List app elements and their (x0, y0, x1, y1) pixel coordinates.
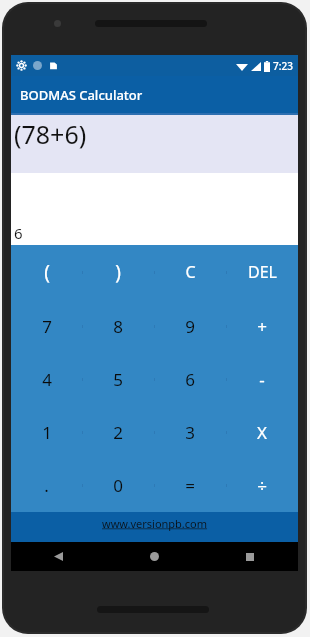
staticText: X (257, 421, 267, 444)
staticText: 4 (42, 368, 52, 391)
button[interactable]: 1 (11, 406, 82, 459)
button[interactable]: DEL (226, 245, 298, 299)
button[interactable]: 9 (154, 299, 226, 353)
button[interactable]: . (11, 459, 82, 512)
staticText: 2 (113, 421, 123, 444)
button[interactable]: 0 (82, 459, 154, 512)
staticText: DEL (248, 261, 277, 283)
button[interactable]: ÷ (226, 459, 298, 512)
button[interactable]: 6 (154, 353, 226, 406)
button[interactable]: 8 (82, 299, 154, 353)
button[interactable]: Home (106, 542, 202, 571)
button[interactable]: 2 (82, 406, 154, 459)
staticText: - (259, 368, 265, 391)
button[interactable]: C (154, 245, 226, 299)
button[interactable]: X (226, 406, 298, 459)
staticText: 6 (185, 368, 195, 391)
button[interactable]: (78+6) (11, 113, 298, 173)
staticText: www.versionpb.com (102, 516, 208, 531)
button[interactable]: Back (11, 542, 106, 571)
staticText: 6 (14, 223, 23, 243)
staticText: ) (115, 259, 121, 285)
staticText: C (185, 261, 196, 283)
staticText: 7:23 (273, 59, 293, 73)
staticText: BODMAS Calculator (20, 86, 143, 104)
button[interactable]: - (226, 353, 298, 406)
button[interactable]: 3 (154, 406, 226, 459)
staticText: 8 (113, 315, 123, 338)
staticText: . (44, 474, 49, 497)
button[interactable]: 6 (11, 173, 298, 245)
button[interactable]: www.versionpb.com (11, 512, 298, 542)
button[interactable]: ) (82, 245, 154, 299)
staticText: 5 (113, 368, 123, 391)
button[interactable]: = (154, 459, 226, 512)
button[interactable]: 4 (11, 353, 82, 406)
staticText: 0 (113, 474, 123, 497)
button[interactable]: ( (11, 245, 82, 299)
staticText: ( (44, 259, 50, 285)
staticText: 1 (42, 421, 52, 444)
button[interactable]: Recent apps (202, 542, 298, 571)
staticText: = (185, 474, 195, 497)
staticText: 3 (185, 421, 195, 444)
button[interactable]: + (226, 299, 298, 353)
button[interactable]: 5 (82, 353, 154, 406)
staticText: + (257, 315, 267, 338)
staticText: ÷ (257, 474, 267, 497)
staticText: 9 (185, 315, 195, 338)
button[interactable]: 7 (11, 299, 82, 353)
staticText: 7 (42, 315, 52, 338)
staticText: (78+6) (14, 117, 87, 151)
